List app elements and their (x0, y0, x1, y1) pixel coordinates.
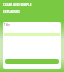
staticText: EXPLAINED (3, 10, 20, 14)
button[interactable] (5, 59, 59, 64)
staticText: CLEAR AND SIMPLE (3, 3, 32, 7)
staticText: Title (4, 23, 10, 27)
